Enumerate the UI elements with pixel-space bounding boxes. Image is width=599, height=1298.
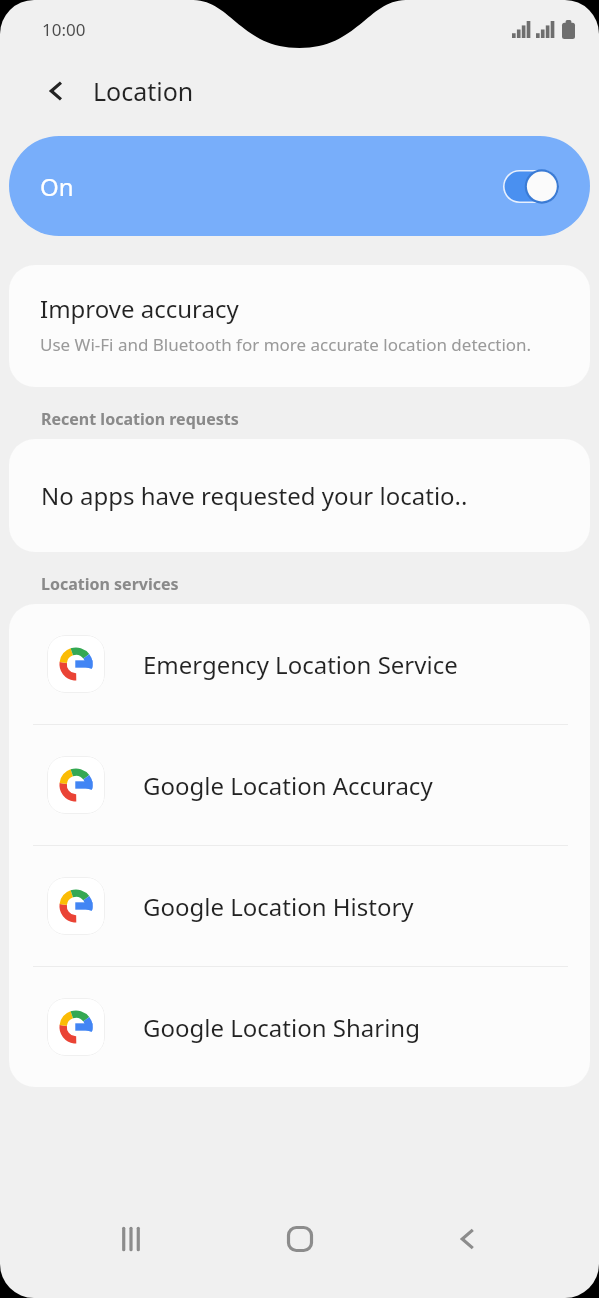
staticText: Improve accuracy [40,292,239,325]
button[interactable]: Improve accuracy [9,265,590,387]
staticText: Google Location Sharing [143,1011,420,1044]
button[interactable]: Google Location Accuracy [9,725,590,845]
button[interactable]: Google Location Sharing [9,967,590,1087]
button[interactable]: Recent apps [94,1202,168,1276]
staticText: No apps have requested your locatio.. [41,479,468,512]
staticText: 10:00 [42,18,86,41]
button[interactable]: On [9,136,590,236]
button[interactable]: Emergency Location Service [9,604,590,724]
staticText: Use Wi-Fi and Bluetooth for more accurat… [40,333,532,356]
button[interactable]: Home [263,1202,337,1276]
staticText: Recent location requests [41,408,239,430]
button[interactable]: No apps have requested your locatio.. [9,439,590,552]
staticText: Google Location Accuracy [143,769,433,802]
staticText: Google Location History [143,890,414,923]
button[interactable]: Location on [503,170,559,203]
staticText: On [40,170,74,203]
staticText: Location services [41,573,179,595]
button[interactable]: Back [431,1202,505,1276]
button[interactable]: Back [40,74,74,108]
staticText: Location [93,74,194,108]
staticText: Emergency Location Service [143,648,458,681]
button[interactable]: Google Location History [9,846,590,966]
